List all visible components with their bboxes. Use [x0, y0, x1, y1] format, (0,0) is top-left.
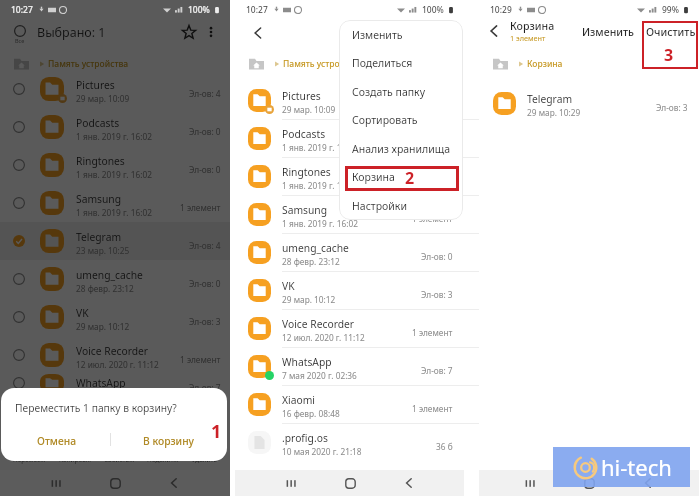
button[interactable]: Recents [278, 470, 304, 496]
button[interactable]: Samsung [0, 184, 230, 222]
button[interactable]: Back [396, 470, 422, 496]
staticText: 1 янв. 2019 г. 16:02 [76, 207, 152, 218]
staticText: Ringtones [76, 154, 125, 168]
button[interactable]: Samsung [235, 195, 464, 233]
button[interactable]: WhatsApp [0, 374, 230, 392]
button[interactable]: umeng_cache [235, 233, 464, 271]
staticText: 3 [664, 44, 674, 66]
staticText: Pictures [282, 89, 321, 103]
staticText: Свойств... [104, 455, 135, 464]
button[interactable]: Podcasts [235, 119, 464, 157]
button[interactable]: Voice Recorder [235, 309, 464, 347]
staticText: 29 мар. 10:12 [282, 294, 336, 305]
staticText: Pictures [76, 78, 115, 92]
staticText: 1 элемент [412, 403, 453, 414]
staticText: Samsung [282, 203, 328, 217]
button[interactable]: More options [199, 20, 223, 44]
button[interactable]: Favorite [177, 20, 201, 44]
button[interactable]: Podcasts [0, 108, 230, 146]
staticText: umeng_cache [282, 241, 349, 255]
button[interactable]: Ringtones [0, 146, 230, 184]
staticText: hi-tech [601, 452, 672, 482]
staticText: Сортировать [352, 113, 418, 127]
staticText: umeng_cache [76, 268, 143, 282]
button[interactable]: Анализ хранилища [339, 135, 463, 163]
button[interactable]: Изменить [577, 20, 640, 44]
staticText: Эл-ов: 3 [421, 289, 453, 300]
button[interactable]: В корзину [111, 426, 227, 456]
staticText: Эл-ов: 4 [189, 88, 221, 99]
button[interactable]: Pictures [0, 70, 230, 108]
button[interactable]: Telegram [479, 84, 699, 122]
staticText: 28 февр. 23:12 [76, 283, 134, 294]
button[interactable]: Создать папку [339, 78, 463, 106]
button[interactable]: Home [576, 470, 602, 496]
staticText: Эл-ов: 0 [421, 137, 453, 148]
staticText: Эл-ов: 0 [189, 126, 221, 137]
staticText: Voice Recorder [76, 344, 149, 358]
button[interactable]: Back [161, 470, 187, 496]
staticText: 29 мар. 10:09 [282, 104, 336, 115]
button[interactable]: Pictures [235, 81, 464, 119]
staticText: 1 янв. 2019 г. 16:02 [76, 131, 152, 142]
button[interactable]: VK [235, 271, 464, 309]
staticText: 1 янв. 2019 г. 16:02 [282, 218, 358, 229]
staticText: 2 [405, 167, 415, 189]
button[interactable]: Recents [43, 470, 69, 496]
button[interactable]: Изменить [339, 21, 463, 49]
button[interactable]: Поделиться [339, 49, 463, 77]
button[interactable]: Telegram [0, 222, 230, 260]
button[interactable]: Отмена [1, 426, 111, 456]
staticText: VK [76, 306, 89, 320]
staticText: Эл-ов: 7 [421, 365, 453, 376]
staticText: 99% [662, 4, 679, 16]
button[interactable]: WhatsApp [235, 347, 464, 385]
staticText: Корзина [352, 170, 395, 184]
staticText: Изменить [582, 25, 635, 39]
staticText: Ringtones [282, 165, 331, 179]
staticText: Переместить 1 папку в корзину? [15, 401, 177, 415]
staticText: 29 мар. 10:29 [527, 107, 581, 118]
button[interactable]: Ringtones [235, 157, 464, 195]
button[interactable]: Xiaomi [235, 385, 464, 423]
staticText: Эл-ов: 0 [189, 164, 221, 175]
staticText: Все [15, 37, 25, 44]
button[interactable]: Back [483, 20, 505, 42]
staticText: Настройки [352, 199, 407, 213]
staticText: 1 янв. 2019 г. 16:02 [282, 142, 358, 153]
button[interactable]: VK [0, 298, 230, 336]
button[interactable]: Select all [7, 19, 32, 44]
button[interactable]: Очистить [641, 20, 699, 44]
button[interactable]: Настройки [339, 192, 463, 220]
staticText: 12 июл. 2020 г. 11:12 [282, 332, 365, 343]
staticText: Изменить [352, 28, 403, 42]
button[interactable]: Back [247, 22, 269, 44]
button[interactable]: Home [337, 470, 363, 496]
staticText: 10:27 [11, 4, 33, 16]
staticText: WhatsApp [76, 376, 126, 390]
staticText: Память устройства [48, 58, 129, 70]
button[interactable]: .profig.os [235, 423, 464, 461]
staticText: 1 элемент [180, 354, 221, 365]
staticText: Voice Recorder [282, 317, 355, 331]
staticText: 1 элемент [510, 33, 546, 43]
button[interactable]: Корзина [339, 163, 463, 191]
button[interactable]: Home [102, 470, 128, 496]
staticText: Podcasts [76, 116, 120, 130]
staticText: Анализ хранилища [352, 142, 451, 156]
button[interactable]: Recents [517, 470, 543, 496]
button[interactable]: Voice Recorder [0, 336, 230, 374]
staticText: Корзина [527, 58, 563, 70]
staticText: В корзину [143, 434, 195, 448]
button[interactable]: Back [635, 470, 661, 496]
staticText: Эл-ов: 0 [421, 251, 453, 262]
staticText: 28 февр. 23:12 [282, 256, 340, 267]
staticText: 1 элемент [180, 202, 221, 213]
button[interactable]: Сортировать [339, 106, 463, 134]
staticText: Корзина [510, 19, 555, 33]
staticText: Podcasts [282, 127, 326, 141]
staticText: 10:27 [246, 4, 268, 16]
staticText: Память устройства [283, 58, 364, 70]
staticText: Эл-ов: 3 [189, 316, 221, 327]
button[interactable]: umeng_cache [0, 260, 230, 298]
